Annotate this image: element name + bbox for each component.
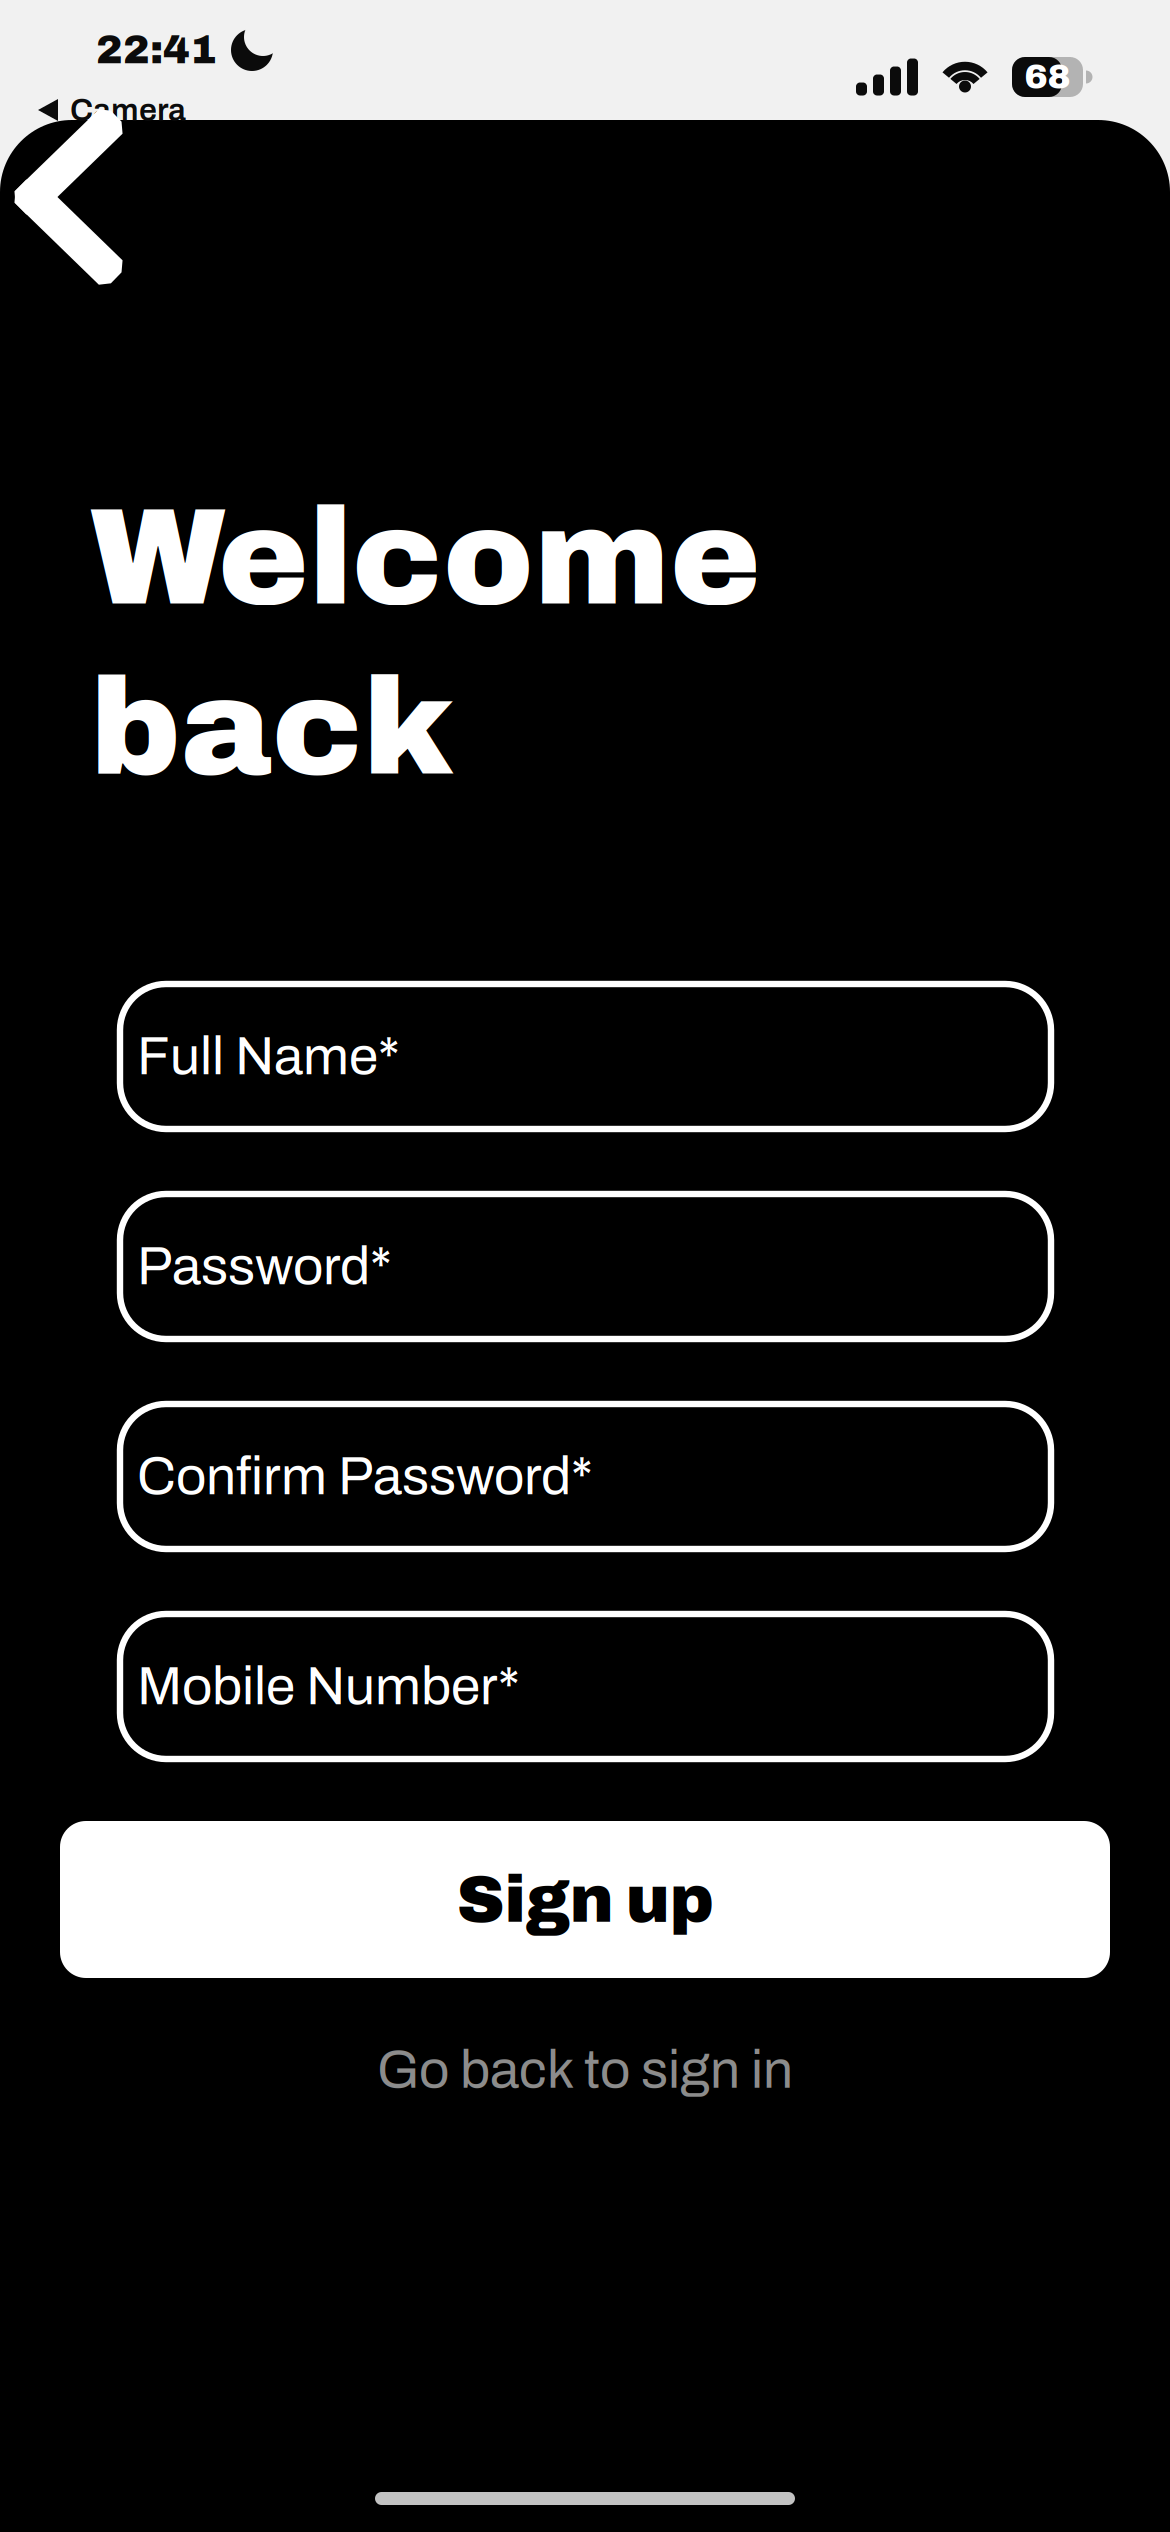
staticText: 68 [1024,58,1070,96]
staticText: Confirm Password* [137,1447,593,1505]
staticText: 22:41 [96,28,217,72]
button[interactable]: Back [12,112,122,282]
button[interactable]: Confirm Password* [120,1404,1051,1549]
staticText: Go back to sign in [377,2041,793,2099]
staticText: Password* [137,1237,392,1295]
button[interactable]: Full Name* [120,984,1051,1129]
staticText: back [90,654,454,802]
button[interactable]: Mobile Number* [120,1614,1051,1759]
button[interactable]: Sign up [60,1821,1110,1978]
staticText: Camera [70,93,186,127]
button[interactable]: Password* [120,1194,1051,1339]
staticText: Welcome [90,484,761,632]
staticText: Mobile Number* [137,1657,520,1715]
button[interactable]: Return to Camera [38,93,186,127]
button[interactable]: Go back to sign in [60,2032,1110,2108]
staticText: Full Name* [137,1027,400,1085]
staticText: Sign up [456,1863,713,1936]
